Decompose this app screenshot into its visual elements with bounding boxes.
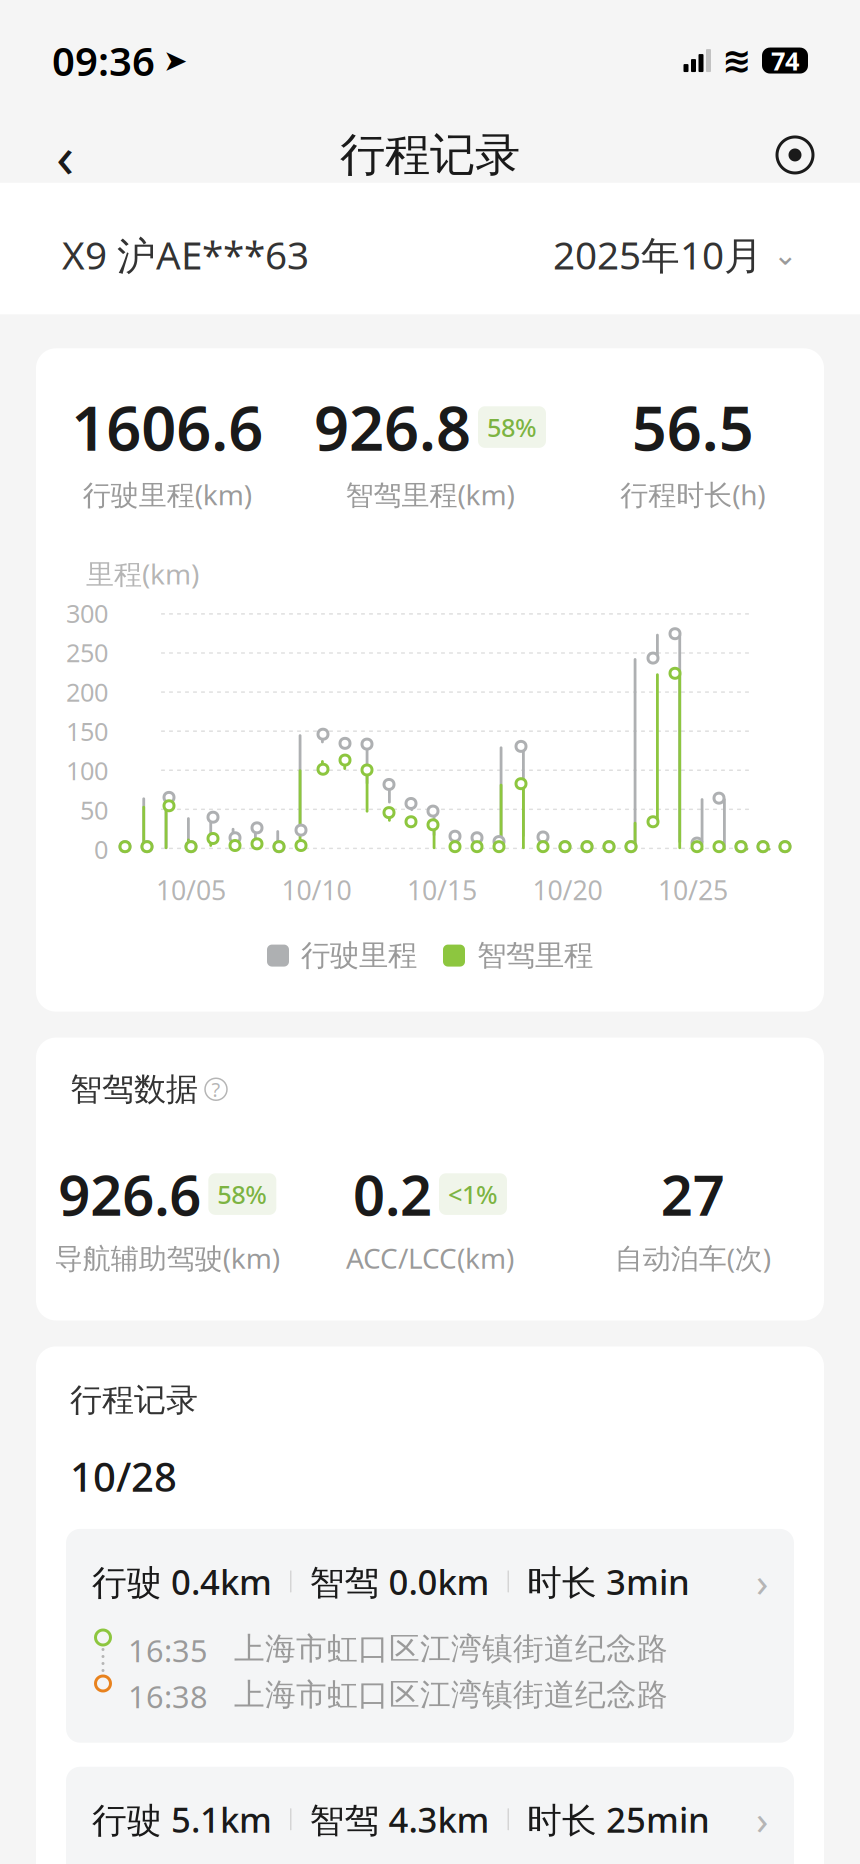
staticText: 上海市虹口区江湾镇街道纪念路 [234,1676,668,1714]
staticText: 10/25 [658,872,728,908]
button[interactable]: 关于智驾数据 [205,1078,227,1100]
staticText: › [756,1555,768,1608]
staticText: 926.6 [58,1157,201,1231]
staticText: ⌄ [773,238,798,271]
staticText: ➤ [163,44,188,77]
staticText: ‹ [56,116,74,194]
staticText: 10/15 [407,872,477,908]
staticText: 行程记录 [70,1380,198,1420]
staticText: 自动泊车(次) [615,1239,771,1276]
staticText: 10/28 [70,1450,177,1503]
staticText: ? [211,1076,220,1103]
staticText: 智驾数据 [70,1070,198,1109]
staticText: 智驾 4.3km [309,1796,489,1842]
staticText: 智驾里程 [477,938,593,974]
staticText: 0.2 [353,1157,432,1231]
button[interactable]: 行驶 5.1km [66,1767,794,1864]
staticText: 10/20 [532,872,602,908]
staticText: 27 [661,1157,725,1231]
staticText: 里程(km) [86,555,199,592]
staticText: ≋ [722,41,751,80]
staticText: › [756,1793,768,1846]
staticText: 50 [80,793,108,827]
staticText: ACC/LCC(km) [346,1239,514,1276]
staticText: 10/10 [281,872,351,908]
staticText: 智驾 0.0km [309,1558,489,1604]
staticText: 16:35 [128,1630,208,1671]
staticText: 09:36 [52,34,155,87]
staticText: 行驶 5.1km [92,1796,272,1842]
button[interactable]: 行驶 0.4km [66,1529,794,1743]
staticText: 16:38 [128,1676,208,1717]
staticText: <1% [448,1177,498,1211]
staticText: 导航辅助驾驶(km) [55,1239,280,1276]
staticText: 行程时长(h) [620,476,765,513]
staticText: 0 [94,832,108,866]
button[interactable]: 返回 [38,128,92,182]
staticText: 56.5 [632,386,754,468]
staticText: X9 沪AE***63 [62,229,309,280]
staticText: 10/05 [156,872,226,908]
staticText: 行程记录 [340,127,520,183]
staticText: 1606.6 [71,386,263,468]
staticText: 58% [487,410,537,444]
staticText: 74 [771,44,799,77]
staticText: 时长 3min [527,1558,690,1604]
staticText: 行驶 0.4km [92,1558,272,1604]
staticText: 58% [217,1177,267,1211]
staticText: 行驶里程 [301,938,417,974]
staticText: 100 [66,754,108,787]
staticText: 上海市虹口区江湾镇街道纪念路 [234,1630,668,1668]
staticText: 926.8 [314,386,471,468]
staticText: 250 [66,636,108,669]
staticText: 智驾里程(km) [345,476,514,513]
staticText: 行驶里程(km) [83,476,252,513]
staticText: 150 [66,714,108,748]
staticText: 300 [66,596,108,630]
button[interactable]: 2025年10月 [553,229,798,280]
staticText: 2025年10月 [553,229,763,280]
button[interactable]: 设置 [768,128,822,182]
staticText: 时长 25min [527,1796,710,1842]
staticText: 200 [66,675,108,709]
